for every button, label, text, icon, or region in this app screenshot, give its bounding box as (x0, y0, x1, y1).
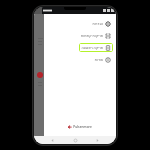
staticText: אודות (94, 58, 103, 62)
staticText: סריקות קודמות (81, 33, 103, 38)
button[interactable]: Recent apps (94, 137, 101, 144)
other: Previous scans (105, 33, 111, 39)
staticText: סריקה ראשונה (81, 45, 103, 50)
other: First scan (105, 45, 111, 51)
button[interactable]: סריקות קודמות (79, 31, 113, 40)
button[interactable]: הגדרות (90, 19, 113, 28)
other: About (105, 57, 111, 63)
staticText: Pulsenmore (73, 125, 92, 129)
staticText: הגדרות (92, 22, 103, 26)
button[interactable]: Back (49, 137, 56, 144)
button[interactable]: אודות (92, 55, 113, 64)
button[interactable]: Home (72, 137, 79, 144)
button[interactable]: סריקה ראשונה (79, 43, 113, 52)
other: Settings (105, 21, 111, 27)
